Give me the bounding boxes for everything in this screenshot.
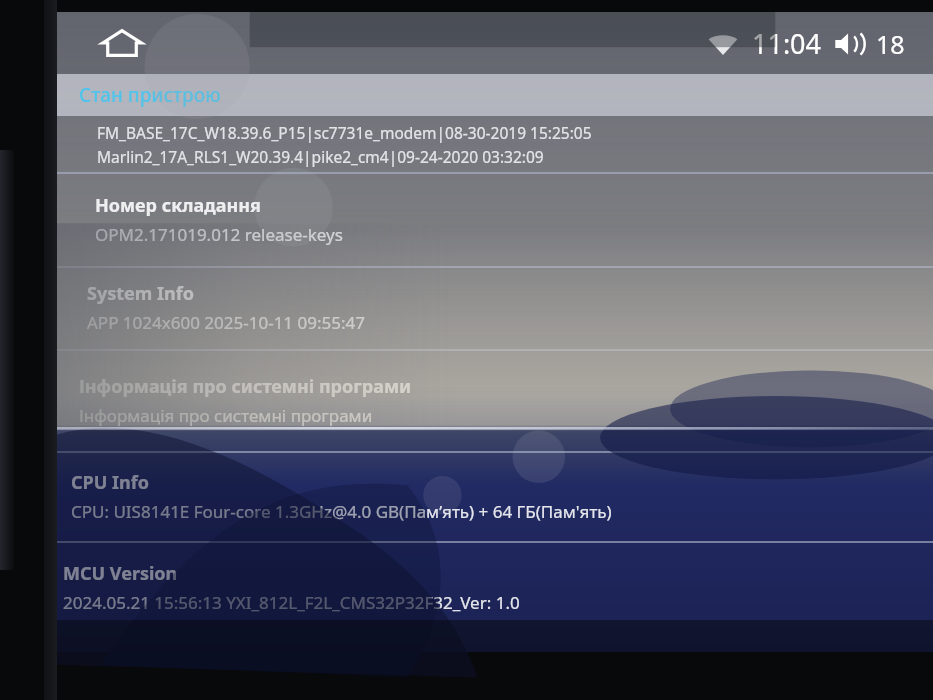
staticText: 18 — [876, 27, 905, 61]
button[interactable]: Інформація про системні програми — [57, 349, 933, 451]
staticText: Інформація про системні програми — [79, 404, 373, 427]
staticText: MCU Version — [63, 561, 178, 586]
button[interactable]: Номер складання — [57, 172, 933, 266]
button[interactable]: FM_BASE_17C_W18.39.6_P15|sc7731e_modem|0… — [57, 116, 933, 172]
staticText: Інформація про системні програми — [79, 374, 412, 399]
button[interactable]: MCU Version — [57, 541, 933, 633]
staticText: OPM2.171019.012 release-keys — [95, 223, 343, 246]
staticText: Marlin2_17A_RLS1_W20.39.4|pike2_cm4|09-2… — [97, 146, 544, 167]
staticText: Стан пристрою — [79, 82, 221, 108]
button[interactable]: CPU Info — [57, 451, 933, 541]
button[interactable]: System Info — [57, 266, 933, 349]
staticText: CPU: UIS8141E Four-core 1.3GHz@4.0 GB(Па… — [71, 500, 612, 523]
staticText: Номер складання — [95, 193, 261, 218]
staticText: FM_BASE_17C_W18.39.6_P15|sc7731e_modem|0… — [97, 122, 592, 143]
button[interactable]: Home — [93, 21, 151, 65]
staticText: System Info — [87, 281, 194, 306]
staticText: CPU Info — [71, 470, 149, 495]
staticText: 11:04 — [752, 25, 822, 62]
staticText: APP 1024x600 2025-10-11 09:55:47 — [87, 311, 365, 334]
staticText: 2024.05.21 15:56:13 YXI_812L_F2L_CMS32P3… — [63, 591, 520, 614]
